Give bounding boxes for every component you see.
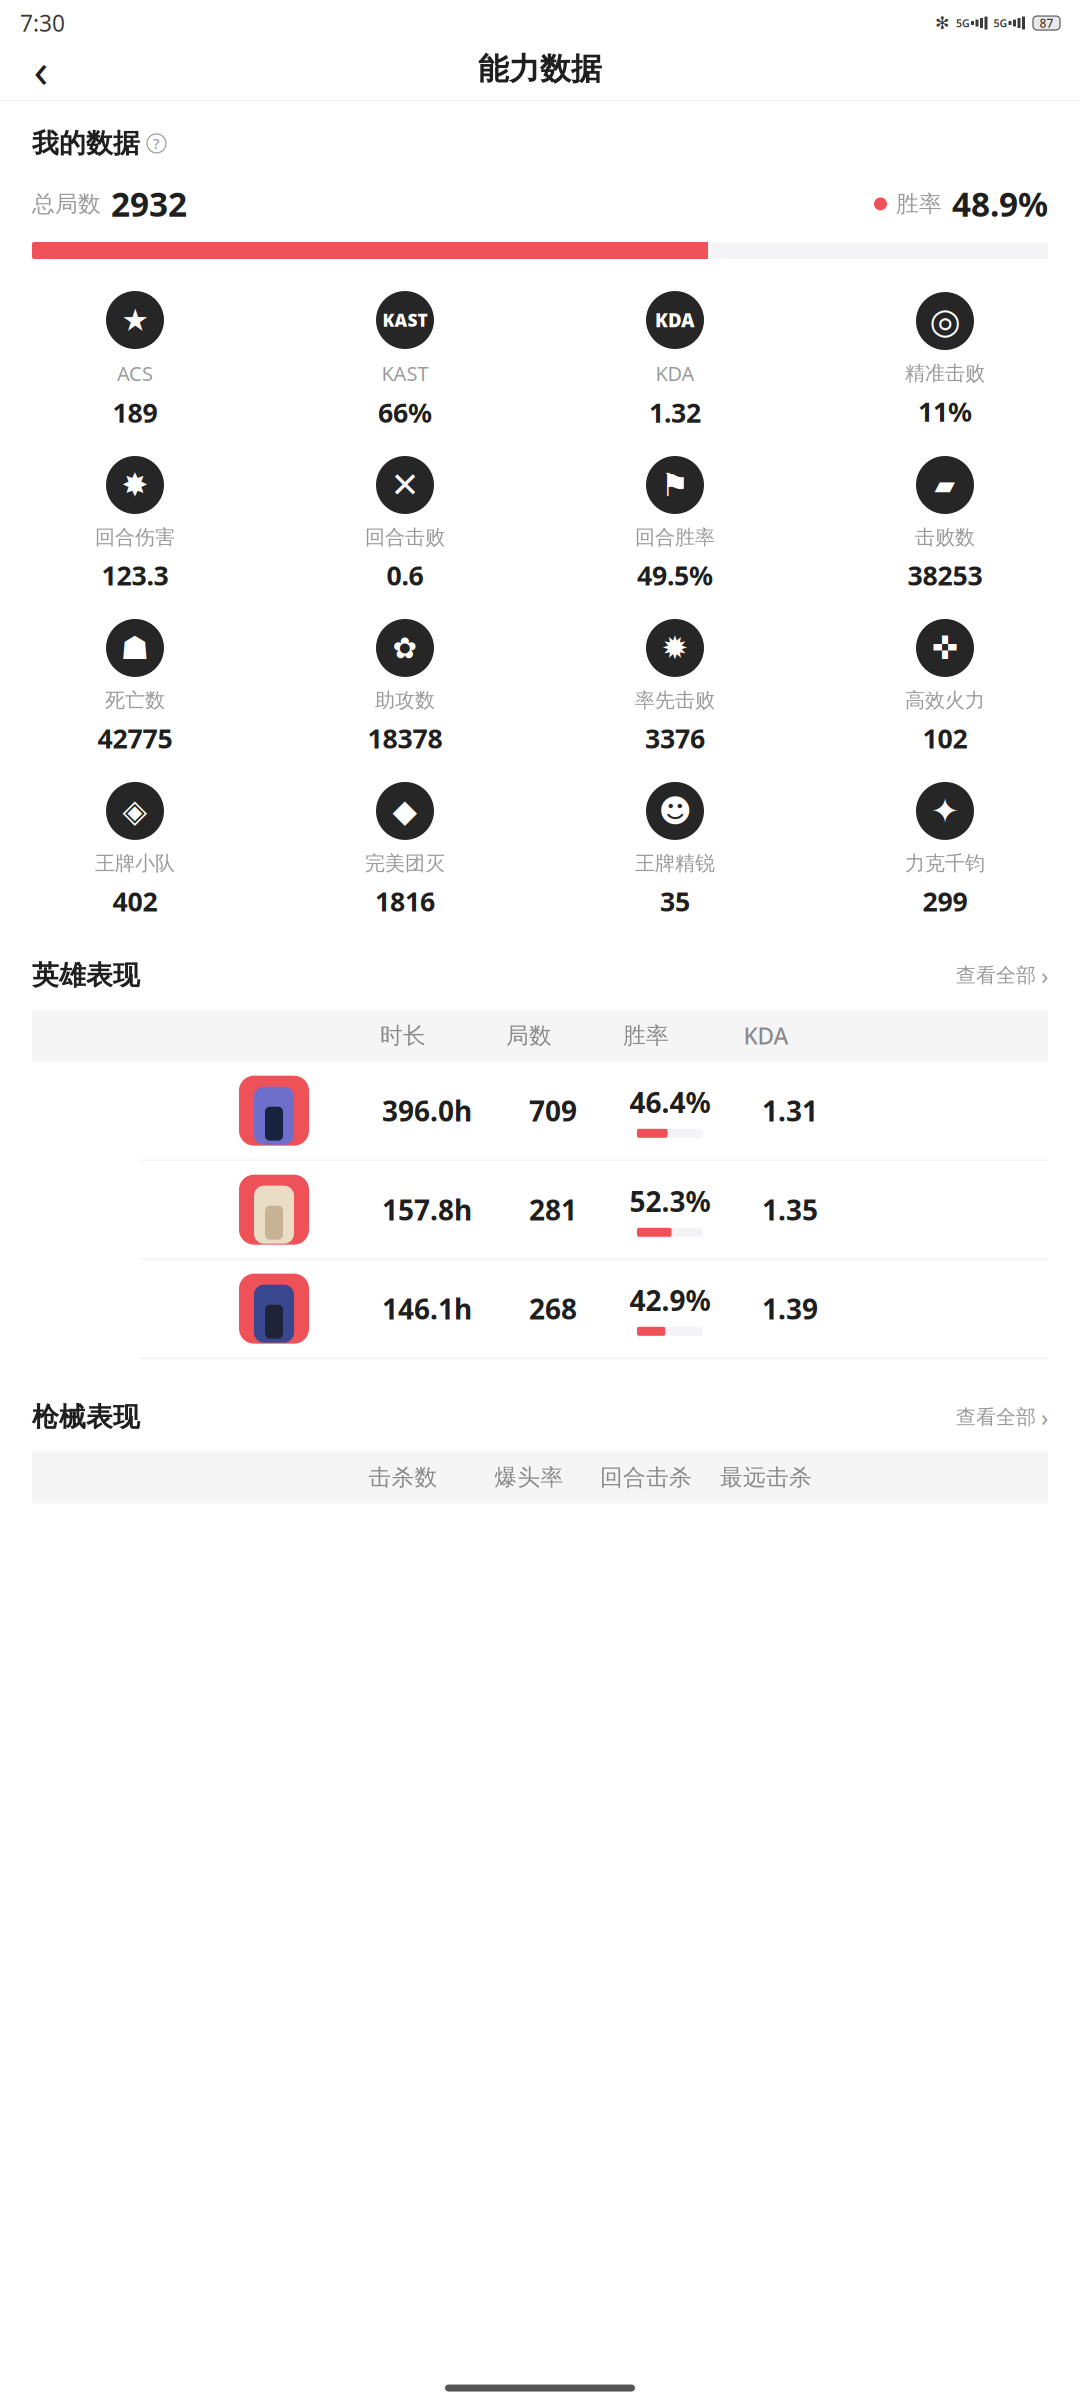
staticText: ✿	[392, 631, 417, 665]
staticText: 42.9%	[629, 1282, 710, 1319]
staticText: 胜率	[623, 1022, 669, 1050]
staticText: 46.4%	[629, 1084, 710, 1121]
staticText: 52.3%	[629, 1183, 710, 1220]
button[interactable]: 396.0h	[0, 1062, 1080, 1161]
staticText: 35	[660, 883, 690, 919]
staticText: 268	[529, 1290, 577, 1327]
staticText: 率先击败	[635, 688, 715, 713]
button[interactable]: 查看全部	[956, 1401, 1048, 1433]
staticText: 11%	[918, 394, 972, 429]
staticText: 1.32	[649, 395, 701, 430]
staticText: 总局数	[32, 190, 101, 218]
staticText: 回合胜率	[635, 525, 715, 550]
staticText: 回合击败	[365, 525, 445, 550]
staticText: 157.8h	[382, 1191, 472, 1228]
staticText: ▰	[934, 470, 955, 500]
staticText: ?	[153, 134, 160, 153]
staticText: 49.5%	[637, 558, 713, 593]
staticText: 击败数	[915, 525, 975, 550]
staticText: ›	[1041, 1401, 1048, 1433]
button[interactable]: ★	[0, 291, 270, 430]
staticText: 我的数据	[32, 127, 140, 160]
button[interactable]: ✦	[810, 782, 1080, 919]
staticText: 击杀数	[368, 1463, 437, 1491]
staticText: 完美团灭	[365, 851, 445, 875]
staticText: KAST	[381, 360, 428, 387]
staticText: 英雄表现	[32, 959, 140, 992]
staticText: ‹	[33, 37, 48, 101]
staticText: ✦	[930, 791, 959, 831]
button[interactable]: ✹	[540, 619, 810, 756]
staticText: KAST	[382, 308, 427, 331]
staticText: 胜率	[896, 190, 942, 218]
staticText: 402	[112, 883, 157, 919]
staticText: 时长	[380, 1022, 426, 1050]
button[interactable]: ⚑	[540, 456, 810, 593]
button[interactable]: ◎	[810, 292, 1080, 429]
staticText: 回合击杀	[600, 1463, 692, 1491]
button[interactable]: ✿	[270, 619, 540, 756]
button[interactable]: ▰	[810, 456, 1080, 593]
staticText: ACS	[117, 360, 153, 387]
button[interactable]: ✕	[270, 456, 540, 593]
staticText: 189	[112, 395, 157, 430]
staticText: 最远击杀	[720, 1463, 812, 1491]
staticText: ◆	[392, 793, 417, 829]
button[interactable]: KAST	[270, 291, 540, 430]
button[interactable]: 157.8h	[0, 1161, 1080, 1260]
button[interactable]: ✸	[0, 456, 270, 593]
button[interactable]: ◈	[0, 782, 270, 919]
staticText: 回合伤害	[95, 525, 175, 550]
staticText: 66%	[378, 395, 432, 430]
staticText: 2932	[111, 182, 187, 226]
button[interactable]: ✜	[810, 619, 1080, 756]
staticText: 42775	[97, 720, 172, 756]
staticText: ✸	[121, 467, 148, 503]
staticText: 709	[529, 1092, 577, 1129]
staticText: 查看全部	[956, 1405, 1036, 1429]
staticText: 7:30	[20, 8, 65, 38]
staticText: KDA	[743, 1021, 788, 1051]
staticText: 枪械表现	[32, 1401, 140, 1433]
staticText: ✻	[935, 13, 950, 33]
staticText: 1.31	[762, 1092, 818, 1129]
button[interactable]: Back	[16, 44, 66, 94]
staticText: 146.1h	[382, 1290, 472, 1327]
staticText: 299	[922, 883, 967, 919]
staticText: 力克千钧	[905, 851, 985, 875]
button[interactable]: KDA	[540, 291, 810, 430]
staticText: 死亡数	[105, 688, 165, 713]
staticText: 1.39	[762, 1290, 818, 1327]
button[interactable]: 查看全部	[956, 959, 1048, 991]
staticText: ✜	[931, 630, 958, 666]
staticText: 396.0h	[382, 1092, 472, 1129]
staticText: 3376	[645, 720, 705, 756]
staticText: ◈	[122, 793, 147, 829]
staticText: ✕	[390, 465, 419, 505]
staticText: ☗	[120, 630, 149, 666]
staticText: 123.3	[101, 558, 168, 593]
staticText: 王牌小队	[95, 851, 175, 875]
staticText: 0.6	[386, 558, 423, 593]
staticText: ⚑	[660, 467, 689, 503]
staticText: 87	[1039, 15, 1053, 31]
staticText: 48.9%	[952, 182, 1048, 226]
button[interactable]: ◆	[270, 782, 540, 919]
staticText: ✹	[661, 630, 688, 666]
button[interactable]: 146.1h	[0, 1260, 1080, 1359]
staticText: KDA	[655, 308, 695, 332]
button[interactable]: ☗	[0, 619, 270, 756]
staticText: 能力数据	[478, 50, 602, 88]
staticText: 查看全部	[956, 963, 1036, 988]
staticText: 助攻数	[375, 688, 435, 713]
staticText: 38253	[907, 558, 982, 593]
button[interactable]: ☻	[540, 782, 810, 919]
staticText: 爆头率	[494, 1463, 563, 1491]
button[interactable]: About my data	[147, 134, 166, 153]
staticText: 局数	[506, 1022, 552, 1050]
staticText: 王牌精锐	[635, 851, 715, 875]
staticText: 1.35	[762, 1191, 818, 1228]
staticText: ★	[121, 303, 148, 337]
staticText: KDA	[655, 360, 694, 387]
staticText: 精准击败	[905, 361, 985, 386]
